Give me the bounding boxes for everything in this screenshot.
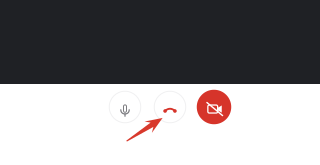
button[interactable]: Turn camera off — [197, 90, 231, 124]
button[interactable]: End call — [154, 91, 186, 123]
button[interactable]: Mute — [109, 91, 141, 123]
